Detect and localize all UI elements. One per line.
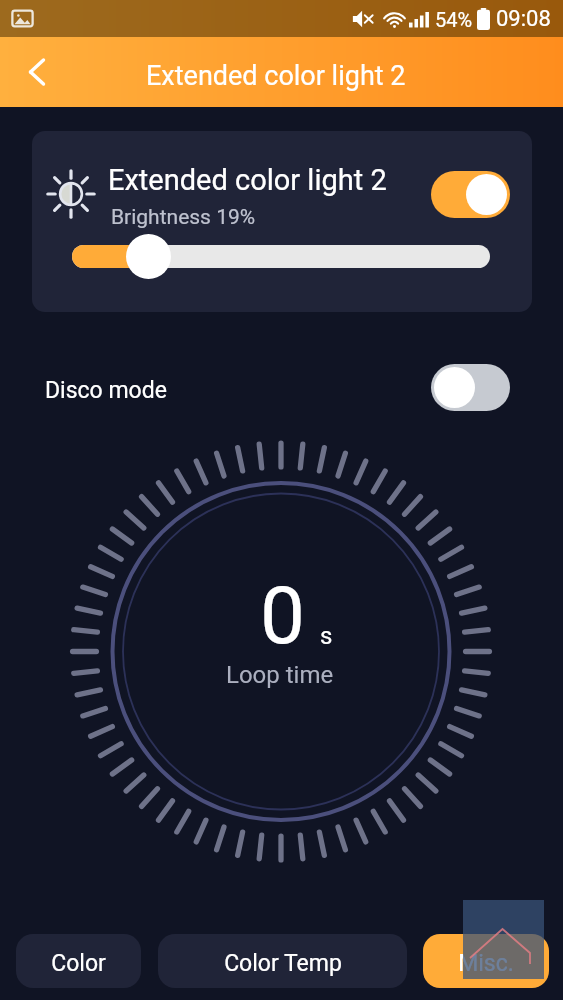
button[interactable]: Extended color light 2: [32, 131, 532, 312]
button[interactable]: Misc.: [423, 934, 549, 988]
button[interactable]: Turn on: [431, 364, 510, 411]
staticText: Extended color light 2: [146, 60, 406, 92]
staticText: 09:08: [496, 6, 551, 32]
staticText: Extended color light 2: [108, 163, 387, 197]
button[interactable]: [72, 233, 490, 279]
staticText: s: [320, 622, 333, 650]
staticText: Misc.: [458, 950, 514, 977]
button[interactable]: Color: [16, 934, 141, 988]
staticText: Loop time: [226, 661, 334, 689]
button[interactable]: Back: [8, 43, 66, 101]
button[interactable]: Disco mode: [0, 360, 563, 414]
button[interactable]: Turn off: [431, 171, 510, 218]
staticText: Brightness 19%: [111, 205, 256, 230]
staticText: 0: [260, 569, 305, 663]
staticText: Color Temp: [224, 950, 342, 977]
staticText: Disco mode: [45, 377, 167, 404]
button[interactable]: Color Temp: [158, 934, 407, 988]
staticText: Color: [51, 950, 106, 977]
staticText: 54%: [435, 8, 473, 31]
